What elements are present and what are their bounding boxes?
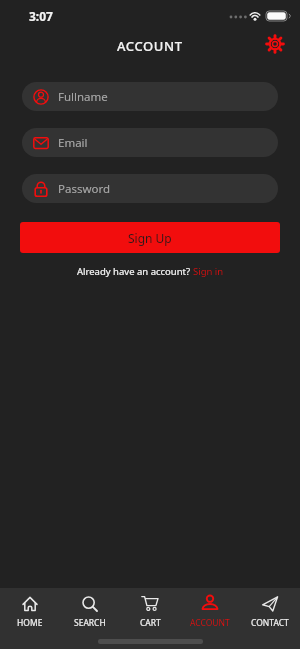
staticText: CONTACT bbox=[251, 617, 289, 629]
button[interactable] bbox=[264, 33, 286, 55]
staticText: ACCOUNT bbox=[117, 37, 183, 55]
staticText: ACCOUNT bbox=[190, 617, 230, 629]
staticText: Email bbox=[58, 135, 88, 151]
button[interactable]: Email bbox=[22, 128, 278, 157]
button[interactable]: Password bbox=[22, 174, 278, 203]
button[interactable]: HOME bbox=[0, 594, 60, 629]
button[interactable]: CONTACT bbox=[240, 594, 300, 629]
button[interactable]: Sign in bbox=[193, 265, 224, 278]
staticText: Sign Up bbox=[128, 230, 172, 246]
button[interactable]: ACCOUNT bbox=[180, 594, 240, 629]
staticText: Password bbox=[58, 181, 111, 197]
staticText: HOME bbox=[17, 617, 43, 629]
button[interactable]: Fullname bbox=[22, 82, 278, 111]
staticText: SEARCH bbox=[74, 617, 106, 629]
staticText: 3:07 bbox=[29, 8, 53, 24]
staticText: Already have an account? bbox=[77, 265, 193, 278]
staticText: Fullname bbox=[58, 89, 108, 105]
button[interactable]: CART bbox=[120, 594, 180, 629]
button[interactable]: Sign Up bbox=[20, 222, 280, 253]
button[interactable]: SEARCH bbox=[60, 594, 120, 629]
staticText: CART bbox=[140, 617, 161, 629]
